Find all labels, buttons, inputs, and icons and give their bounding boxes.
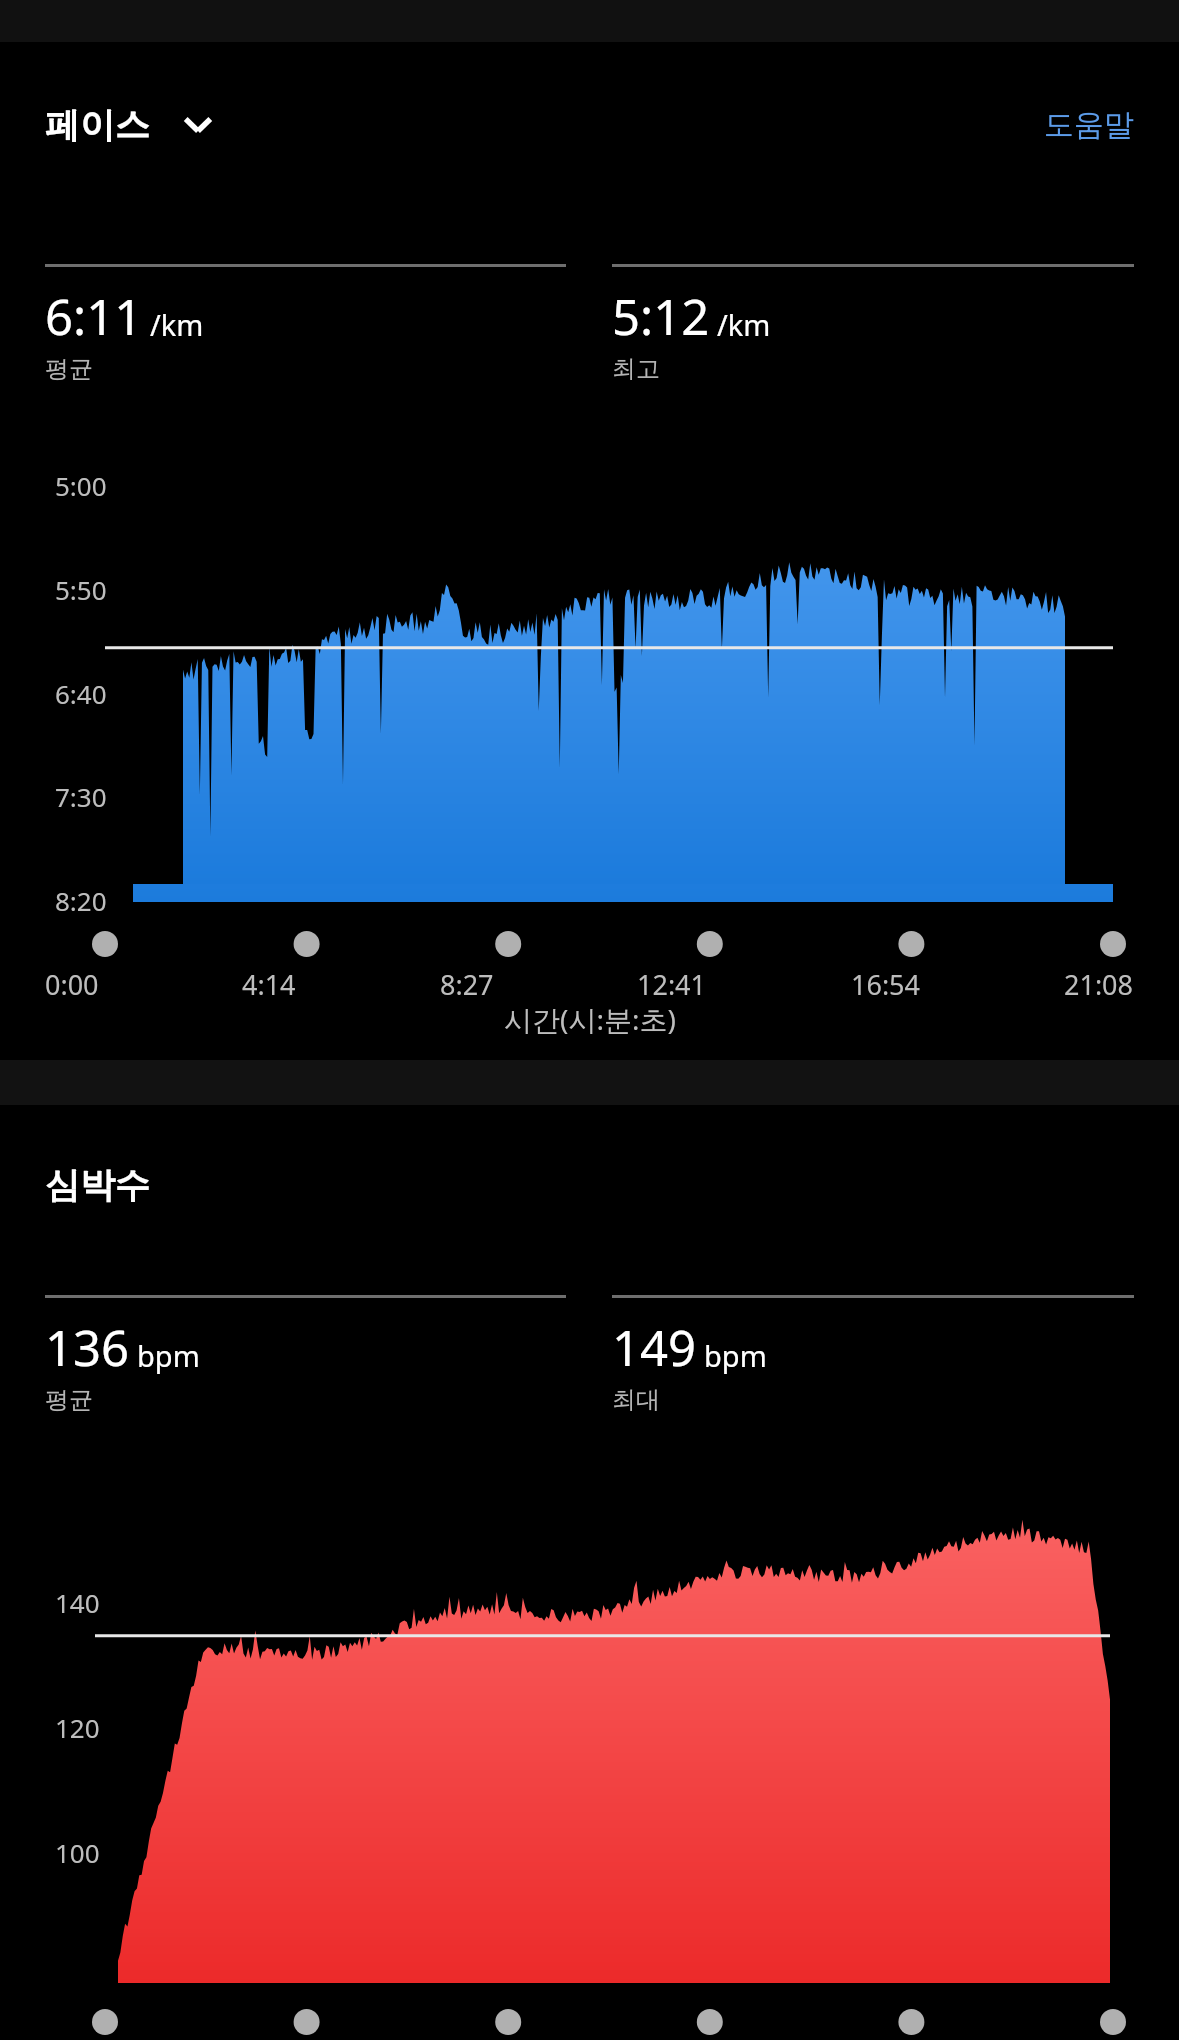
staticText: 평균 [45, 1385, 93, 1415]
staticText: 5:12 [612, 283, 710, 350]
staticText: 0:00 [45, 966, 99, 1003]
staticText: bpm [137, 1336, 200, 1375]
staticText: 도움말 [1044, 106, 1134, 144]
staticText: 최대 [612, 1385, 660, 1415]
staticText: bpm [704, 1336, 767, 1375]
staticText: 심박수 [45, 1163, 150, 1207]
staticText: 페이스 [45, 103, 150, 147]
staticText: /km [150, 305, 204, 344]
staticText: 136 [45, 1314, 130, 1381]
staticText: 7:30 [55, 779, 107, 814]
staticText: 최고 [612, 354, 660, 384]
staticText: /km [717, 305, 771, 344]
staticText: 12:41 [637, 966, 707, 1003]
staticText: 6:40 [55, 676, 107, 711]
staticText: 100 [55, 1835, 100, 1870]
other: Change metric [176, 103, 220, 147]
staticText: 120 [55, 1710, 100, 1745]
staticText: 6:11 [45, 283, 143, 350]
staticText: 16:54 [851, 966, 921, 1003]
staticText: 5:00 [55, 468, 107, 503]
button[interactable]: 도움말 [999, 94, 1179, 156]
staticText: 8:20 [55, 883, 107, 918]
staticText: 8:27 [440, 966, 494, 1003]
staticText: 시간(시:분:초) [504, 1000, 676, 1038]
staticText: 5:50 [55, 572, 107, 607]
staticText: 평균 [45, 354, 93, 384]
staticText: 140 [55, 1585, 100, 1620]
staticText: 4:14 [242, 966, 296, 1003]
button[interactable]: 페이스 [45, 103, 228, 147]
staticText: 149 [612, 1314, 697, 1381]
staticText: 21:08 [1064, 966, 1134, 1003]
